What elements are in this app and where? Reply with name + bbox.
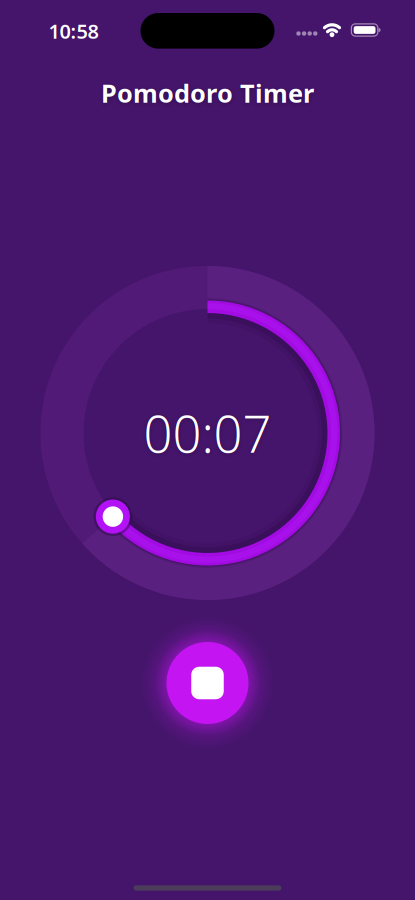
- staticText: 10:58: [48, 18, 98, 44]
- staticText: 00:07: [143, 399, 271, 467]
- button[interactable]: [93, 497, 132, 536]
- staticText: Pomodoro Timer: [101, 76, 314, 110]
- button[interactable]: [140, 616, 274, 750]
